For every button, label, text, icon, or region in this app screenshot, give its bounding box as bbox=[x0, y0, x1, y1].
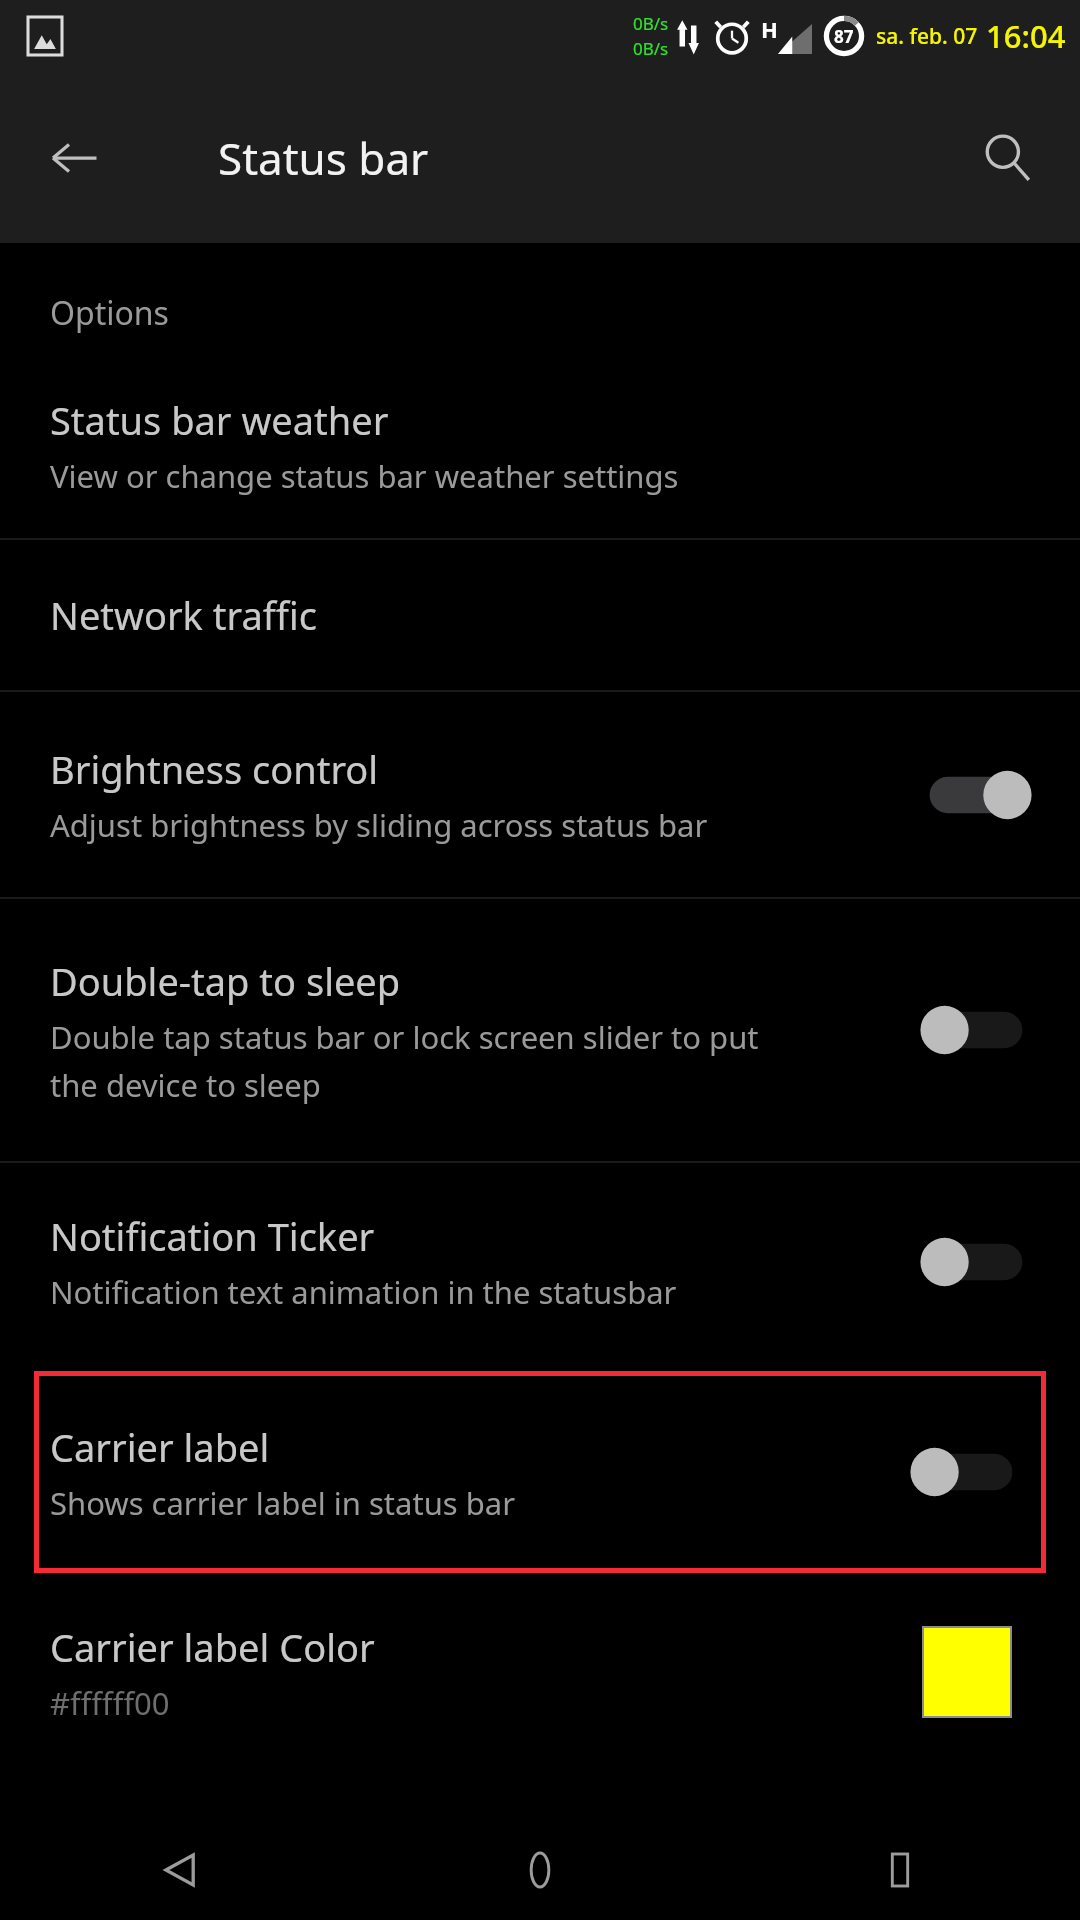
staticText: View or change status bar weather settin… bbox=[50, 455, 679, 497]
button[interactable]: Carrier label Color bbox=[0, 1587, 1080, 1757]
staticText: Options bbox=[50, 291, 169, 335]
button[interactable]: Back bbox=[34, 118, 114, 198]
staticText: sa. feb. 07 bbox=[876, 22, 978, 51]
staticText: H bbox=[761, 14, 778, 44]
button[interactable]: Network traffic bbox=[0, 540, 1080, 690]
staticText: 0B/s bbox=[633, 37, 669, 60]
button[interactable]: Home bbox=[360, 1820, 720, 1920]
staticText: Notification Ticker bbox=[50, 1210, 375, 1262]
staticText: Status bar weather bbox=[50, 394, 389, 446]
staticText: #ffffff00 bbox=[50, 1682, 170, 1724]
staticText: Adjust brightness by sliding across stat… bbox=[50, 804, 708, 846]
button[interactable]: Search bbox=[964, 115, 1050, 201]
button[interactable]: Back bbox=[0, 1820, 360, 1920]
button[interactable]: Notification Ticker bbox=[0, 1163, 1080, 1360]
staticText: Shows carrier label in status bar bbox=[50, 1482, 515, 1524]
staticText: Carrier label Color bbox=[50, 1621, 375, 1673]
button[interactable]: Brightness control bbox=[0, 692, 1080, 897]
staticText: 0B/s bbox=[633, 12, 669, 35]
button[interactable]: Recent apps bbox=[720, 1820, 1080, 1920]
staticText: Network traffic bbox=[50, 589, 317, 641]
button[interactable]: Carrier label bbox=[34, 1371, 1046, 1573]
staticText: Double tap status bar or lock screen sli… bbox=[50, 1016, 759, 1106]
button[interactable]: Status bar weather bbox=[0, 353, 1080, 538]
staticText: Double-tap to sleep bbox=[50, 955, 401, 1007]
staticText: 16:04 bbox=[986, 15, 1066, 57]
staticText: Brightness control bbox=[50, 743, 379, 795]
staticText: Status bar bbox=[218, 128, 429, 188]
staticText: Notification text animation in the statu… bbox=[50, 1271, 677, 1313]
staticText: Carrier label bbox=[50, 1421, 270, 1473]
staticText: 87 bbox=[834, 25, 854, 48]
button[interactable]: Double-tap to sleep bbox=[0, 899, 1080, 1161]
